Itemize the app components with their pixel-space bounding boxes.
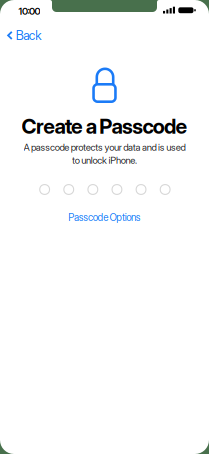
staticText: 10:00 bbox=[18, 5, 40, 17]
staticText: A passcode protects your data and is use… bbox=[23, 141, 185, 153]
staticText: to unlock iPhone. bbox=[72, 154, 137, 166]
button[interactable]: Back bbox=[7, 28, 41, 43]
staticText: Create a Passcode bbox=[22, 114, 187, 139]
button[interactable]: Passcode Options bbox=[68, 211, 141, 223]
staticText: Back bbox=[16, 28, 41, 43]
staticText: Passcode Options bbox=[68, 211, 141, 223]
